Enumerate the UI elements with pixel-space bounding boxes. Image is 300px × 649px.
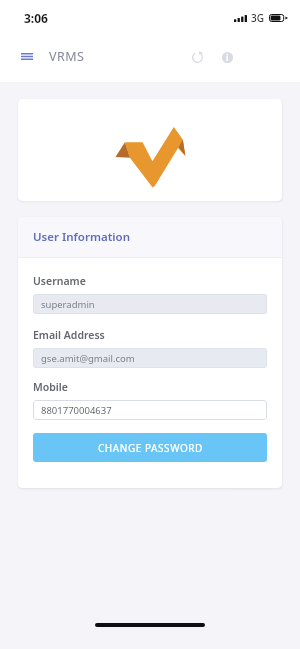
button[interactable]: CHANGE PASSWORD xyxy=(33,433,267,462)
staticText: 8801770004637 xyxy=(41,404,112,417)
staticText: i xyxy=(226,52,229,63)
staticText: gse.amit@gmail.com xyxy=(41,352,135,365)
button[interactable]: Information xyxy=(212,42,242,72)
staticText: 3G xyxy=(251,11,264,25)
staticText: CHANGE PASSWORD xyxy=(98,441,203,455)
staticText: Email Address xyxy=(33,328,105,342)
staticText: 3:06 xyxy=(24,10,48,26)
staticText: superadmin xyxy=(41,298,95,311)
staticText: User Information xyxy=(33,229,131,245)
button[interactable]: Refresh xyxy=(182,42,212,72)
button[interactable]: Open navigation menu xyxy=(10,40,43,73)
button[interactable]: 8801770004637 xyxy=(33,400,267,420)
staticText: Username xyxy=(33,274,86,288)
staticText: VRMS xyxy=(49,48,85,65)
staticText: Mobile xyxy=(33,380,68,394)
